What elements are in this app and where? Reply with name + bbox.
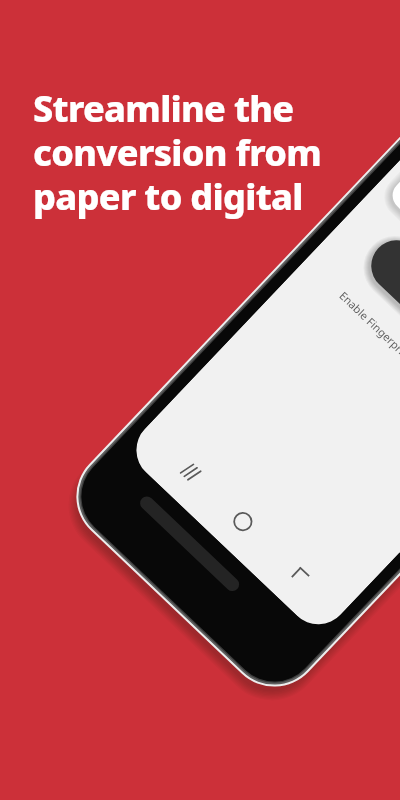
button[interactable]: Streamline the conversion from paper to …	[0, 0, 400, 800]
